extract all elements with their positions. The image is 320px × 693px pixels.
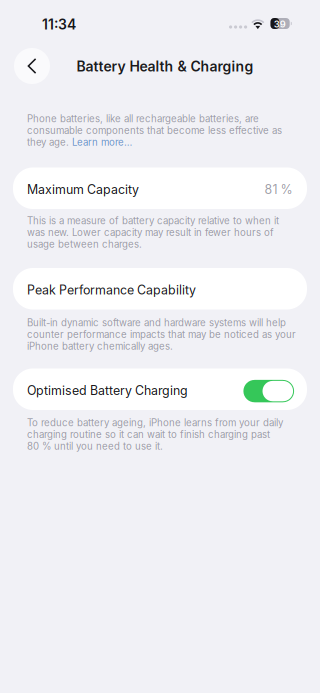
button[interactable]: Maximum Capacity [13,167,307,209]
staticText: Built-in dynamic software and hardware s… [27,317,296,352]
staticText: To reduce battery ageing, iPhone learns … [27,417,283,452]
button[interactable]: Optimised Battery Charging [13,368,307,410]
staticText: 81 % [264,182,292,197]
button[interactable]: Peak Performance Capability [13,268,307,309]
staticText: Phone batteries, like all rechargeable b… [27,113,282,148]
staticText: Optimised Battery Charging [27,383,188,398]
button[interactable]: Phone batteries, like all rechargeable b… [27,113,296,148]
staticText: Peak Performance Capability [27,282,196,297]
staticText: Maximum Capacity [27,182,139,197]
button[interactable]: Back [14,48,50,84]
staticText: 39 [274,18,286,30]
staticText: 11:34 [42,16,76,33]
staticText: This is a measure of battery capacity re… [27,215,279,250]
staticText: Battery Health & Charging [76,58,253,75]
